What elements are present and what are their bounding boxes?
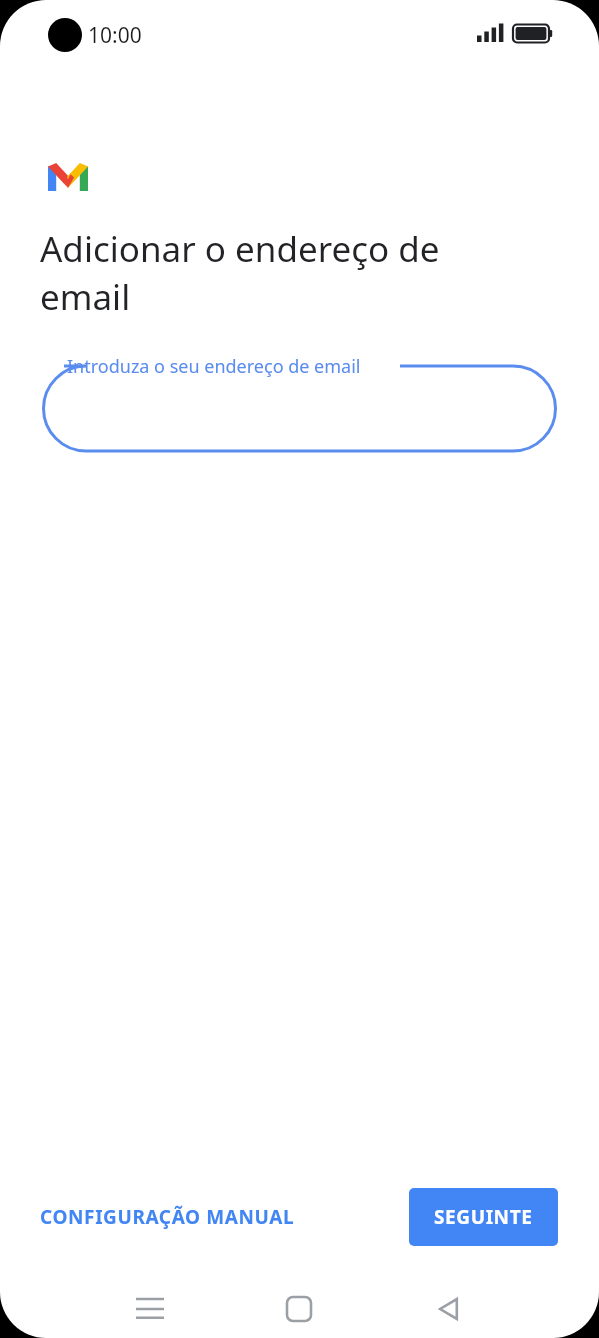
staticText: 10:00 <box>88 21 142 50</box>
button[interactable]: Introduza o seu endereço de email <box>42 352 557 452</box>
button[interactable]: CONFIGURAÇÃO MANUAL <box>26 1194 309 1240</box>
button[interactable]: Recent apps <box>120 1279 180 1338</box>
button[interactable]: Home <box>269 1279 329 1338</box>
button[interactable]: SEGUINTE <box>409 1188 558 1246</box>
staticText: Introduza o seu endereço de email <box>67 354 361 379</box>
staticText: Adicionar o endereço de email <box>40 225 440 320</box>
staticText: SEGUINTE <box>434 1204 533 1230</box>
staticText: CONFIGURAÇÃO MANUAL <box>40 1204 295 1230</box>
button[interactable]: Back <box>419 1279 479 1338</box>
